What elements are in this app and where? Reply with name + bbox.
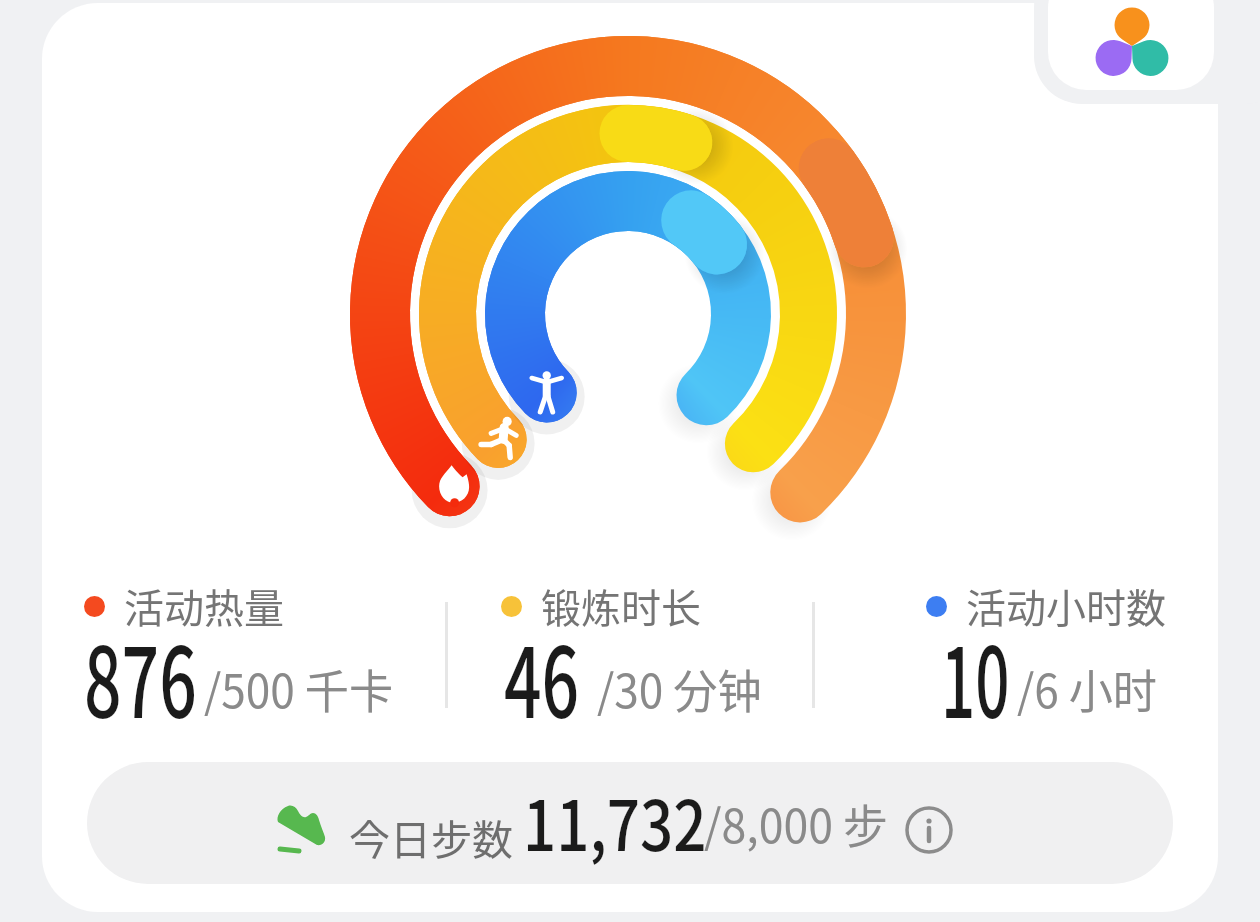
staticText: 今日步数 bbox=[349, 807, 513, 866]
staticText: 876 bbox=[84, 605, 197, 745]
staticText: 10 bbox=[941, 605, 1010, 745]
staticText: 活动小时数 bbox=[966, 577, 1166, 635]
staticText: /30 分钟 bbox=[597, 655, 762, 722]
staticText: 11,732 bbox=[523, 771, 707, 871]
button[interactable] bbox=[906, 807, 952, 853]
button[interactable] bbox=[1048, 0, 1214, 90]
staticText: 锻炼时长 bbox=[541, 577, 701, 635]
button[interactable] bbox=[42, 3, 1218, 912]
staticText: 46 bbox=[504, 605, 579, 745]
button[interactable]: 今日步数 bbox=[87, 762, 1173, 884]
staticText: /500 千卡 bbox=[204, 655, 393, 722]
staticText: /6 小时 bbox=[1017, 655, 1157, 722]
staticText: /8,000 步 bbox=[704, 790, 888, 857]
staticText: 活动热量 bbox=[124, 577, 284, 635]
